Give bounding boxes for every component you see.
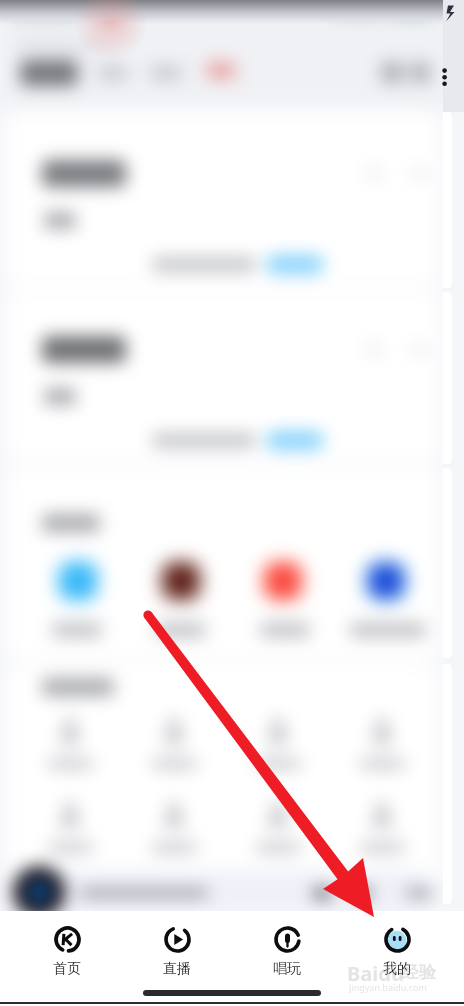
button[interactable]: Profile <box>342 911 452 983</box>
other: Profile <box>384 926 411 953</box>
button[interactable]: 直播 <box>122 911 232 983</box>
button[interactable]: 首页 <box>12 911 122 983</box>
staticText: Baidu <box>347 960 404 987</box>
staticText: 直播 <box>163 960 191 978</box>
staticText: 经验 <box>402 962 436 983</box>
staticText: 唱玩 <box>273 960 301 978</box>
button[interactable]: 唱玩 <box>232 911 342 983</box>
staticText: jingyan.baidu.com <box>349 981 427 993</box>
button[interactable]: More options <box>440 68 452 90</box>
staticText: 我的 <box>383 960 411 978</box>
staticText: 首页 <box>53 960 81 978</box>
